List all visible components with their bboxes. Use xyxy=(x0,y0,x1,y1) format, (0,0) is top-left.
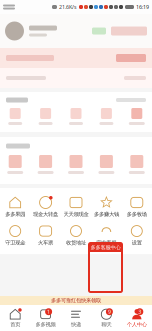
staticText: 设置 xyxy=(132,240,142,246)
staticText: 首页 xyxy=(10,321,20,328)
staticText: 多多可靠红包快来领取 xyxy=(51,297,101,304)
button[interactable]: 3 xyxy=(122,308,152,328)
staticText: 多多牧场 xyxy=(127,211,147,218)
button[interactable]: 首页 xyxy=(0,308,30,328)
button[interactable] xyxy=(0,108,30,125)
button[interactable]: 9 xyxy=(91,308,122,328)
button[interactable] xyxy=(122,108,152,125)
button[interactable]: 1 xyxy=(30,308,61,328)
button[interactable]: 收货地址 xyxy=(61,225,91,246)
button[interactable] xyxy=(91,155,122,174)
button[interactable]: 快递 xyxy=(61,308,91,328)
button[interactable] xyxy=(30,155,61,174)
staticText: 聊天 xyxy=(101,321,111,328)
button[interactable]: 多多果园 xyxy=(0,196,30,218)
staticText: 21.6K/s xyxy=(59,3,77,11)
button[interactable]: 现金大转盘 xyxy=(30,196,61,218)
staticText: 收货地址 xyxy=(66,240,86,246)
button[interactable] xyxy=(91,108,122,125)
button[interactable]: 官方客服 xyxy=(91,225,122,246)
button[interactable] xyxy=(30,108,61,125)
staticText: 16:19 xyxy=(136,3,149,11)
staticText: 守卫现金 xyxy=(5,240,25,246)
button[interactable]: 多多赚大钱 xyxy=(91,196,122,218)
staticText: 官方客服 xyxy=(96,240,116,246)
staticText: 3 xyxy=(138,308,141,315)
staticText: 现金大转盘 xyxy=(33,211,58,218)
staticText: 多多赚大钱 xyxy=(94,211,119,218)
staticText: 多多视频 xyxy=(36,321,56,328)
button[interactable]: 火车票 xyxy=(30,225,61,246)
staticText: 个人中心 xyxy=(127,321,147,328)
button[interactable] xyxy=(0,155,30,174)
button[interactable]: 设置 xyxy=(122,225,152,246)
staticText: 天天领现金 xyxy=(63,211,88,218)
button[interactable]: 多多可靠红包快来领取 xyxy=(0,296,152,305)
button[interactable] xyxy=(61,155,91,174)
staticText: 快递 xyxy=(71,321,81,328)
button[interactable]: 守卫现金 xyxy=(0,225,30,246)
staticText: 火车票 xyxy=(38,240,53,246)
button[interactable] xyxy=(122,155,152,174)
staticText: 1 xyxy=(47,308,50,315)
button[interactable]: 多多牧场 xyxy=(122,196,152,218)
staticText: 多多客服中心 xyxy=(90,244,120,251)
staticText: 9 xyxy=(108,308,111,315)
button[interactable]: 天天领现金 xyxy=(61,196,91,218)
staticText: 多多果园 xyxy=(5,211,25,218)
button[interactable] xyxy=(61,108,91,125)
